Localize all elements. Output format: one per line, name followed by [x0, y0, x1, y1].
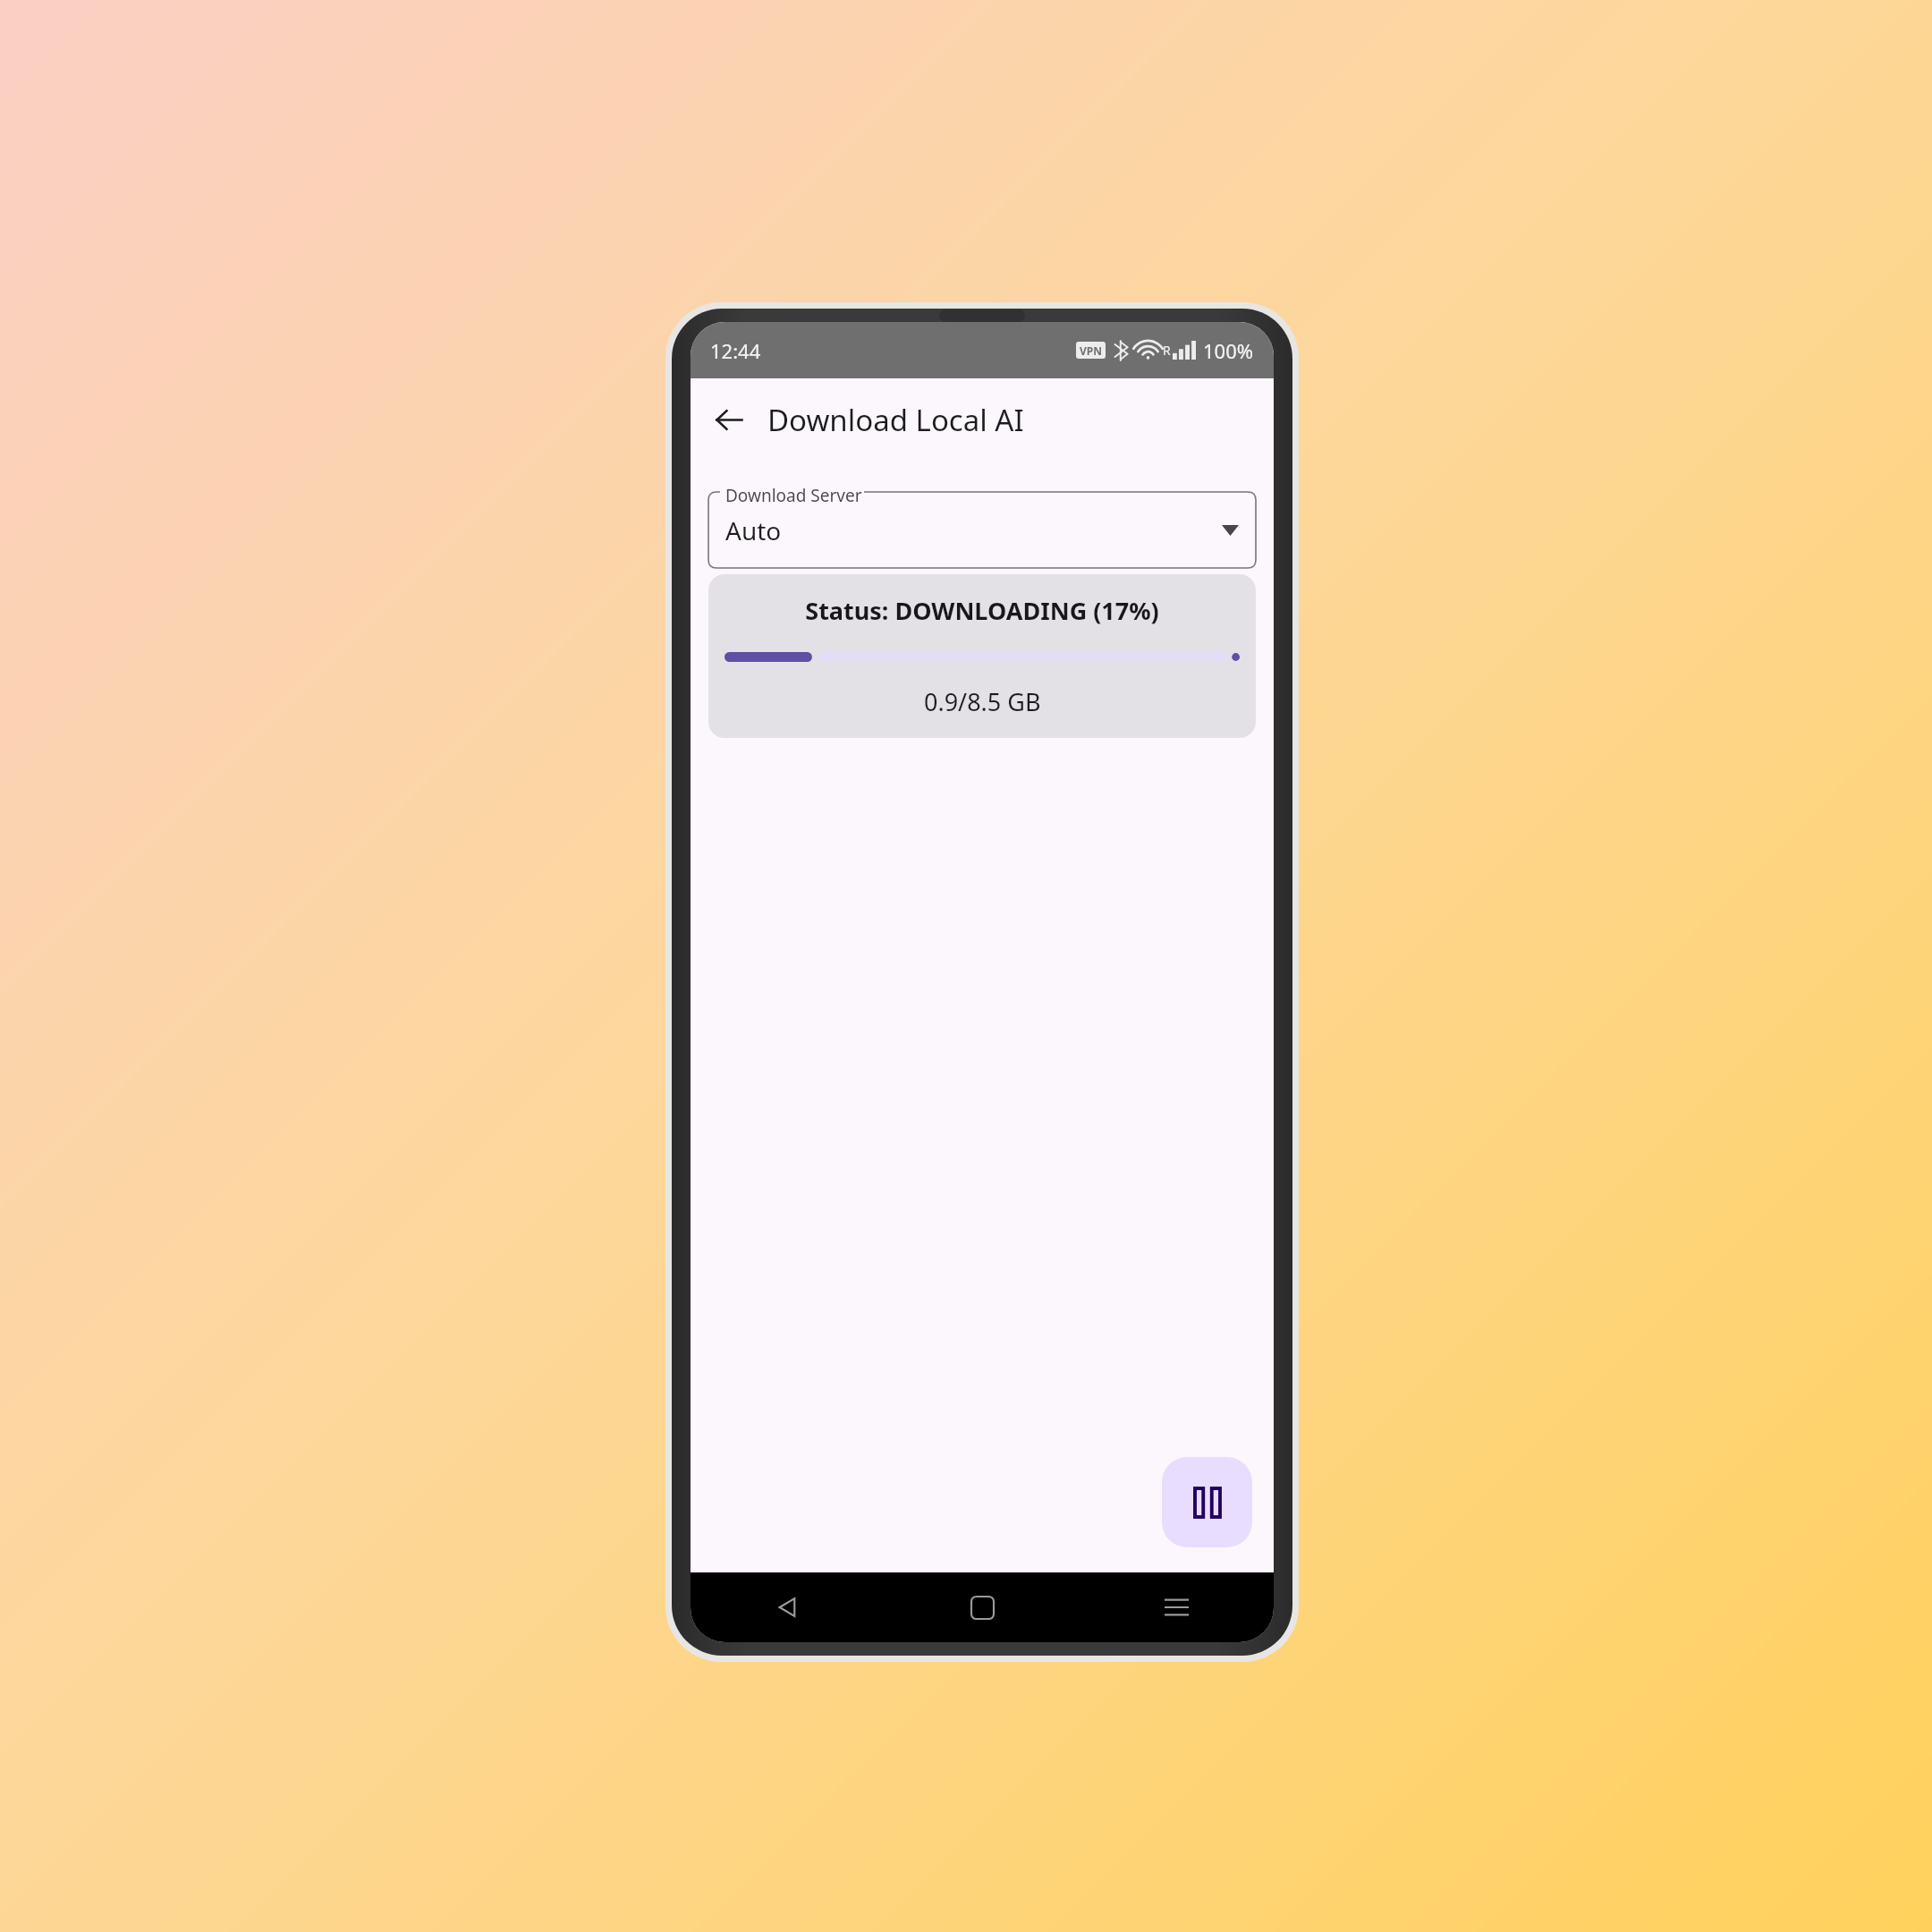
button[interactable]: Home	[885, 1572, 1080, 1642]
staticText: 12:44	[710, 337, 761, 364]
staticText: 100%	[1203, 337, 1254, 364]
button[interactable]: Pause download	[1162, 1457, 1252, 1547]
staticText: Auto	[725, 513, 782, 547]
staticText: R	[1163, 342, 1171, 359]
staticText: Status: DOWNLOADING (17%)	[805, 594, 1159, 627]
staticText: Download Server	[725, 484, 862, 507]
button[interactable]: Back	[691, 1572, 885, 1642]
button[interactable]: Back	[703, 394, 755, 445]
button[interactable]: Auto	[708, 492, 1256, 568]
staticText: VPN	[1080, 343, 1103, 358]
button[interactable]: Status: DOWNLOADING (17%)	[708, 574, 1256, 738]
staticText: 0.9/8.5 GB	[924, 685, 1041, 718]
button[interactable]: Recent apps	[1080, 1572, 1274, 1642]
staticText: Download Local AI	[767, 400, 1024, 440]
